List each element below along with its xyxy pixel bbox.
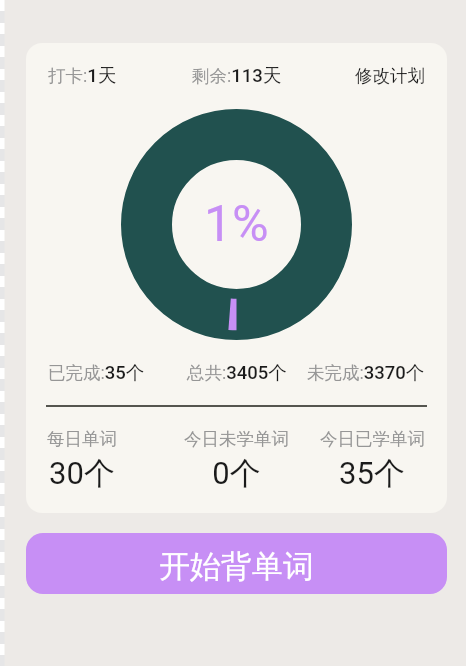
- button[interactable]: 打卡:1天: [48, 64, 117, 87]
- staticText: 每日单词: [47, 428, 117, 450]
- staticText: 35个: [339, 454, 405, 493]
- staticText: 开始背单词: [159, 547, 314, 586]
- staticText: 0个: [212, 454, 261, 493]
- button[interactable]: 修改计划: [355, 65, 425, 87]
- staticText: 已完成:35个: [48, 361, 145, 384]
- staticText: 修改计划: [355, 65, 425, 87]
- staticText: 1%: [204, 195, 269, 254]
- staticText: 打卡:1天: [48, 64, 117, 87]
- staticText: 未完成:3370个: [307, 361, 425, 384]
- staticText: 今日未学单词: [184, 428, 289, 450]
- staticText: 剩余:113天: [192, 64, 282, 87]
- staticText: 30个: [49, 454, 115, 493]
- staticText: 总共:3405个: [187, 361, 287, 384]
- staticText: 今日已学单词: [320, 428, 425, 450]
- button[interactable]: 开始背单词: [26, 533, 447, 594]
